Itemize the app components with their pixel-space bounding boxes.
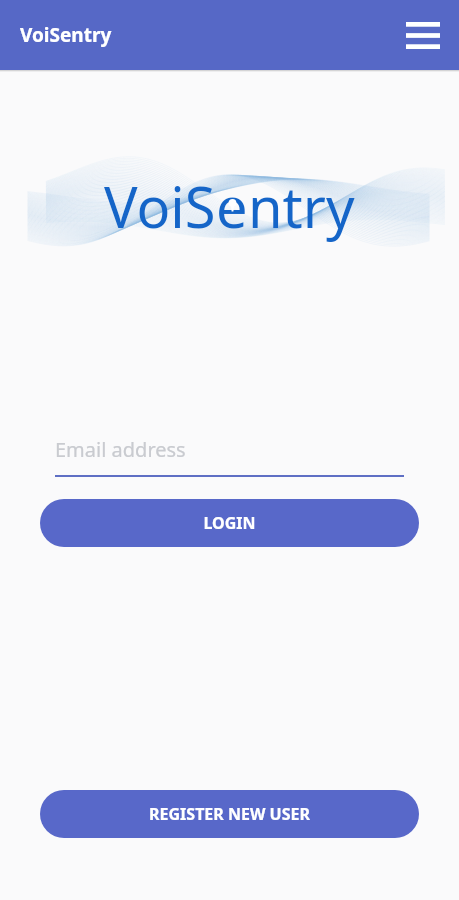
staticText: REGISTER NEW USER bbox=[149, 803, 310, 825]
staticText: VoiS bbox=[104, 168, 216, 244]
staticText: e bbox=[216, 168, 248, 244]
staticText: Email address bbox=[55, 436, 186, 463]
button[interactable]: REGISTER NEW USER bbox=[40, 790, 419, 838]
button[interactable]: LOGIN bbox=[40, 499, 419, 547]
staticText: LOGIN bbox=[203, 512, 256, 534]
staticText: ntry bbox=[248, 168, 355, 244]
button[interactable]: Email address bbox=[55, 436, 404, 477]
staticText: VoiSentry bbox=[20, 22, 112, 48]
button[interactable]: Open navigation menu bbox=[399, 11, 447, 59]
